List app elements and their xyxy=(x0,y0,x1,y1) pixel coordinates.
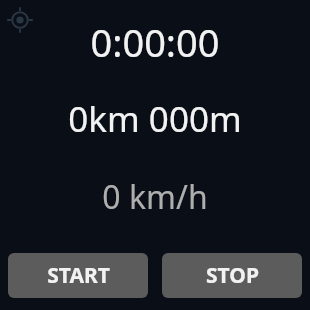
button[interactable]: START xyxy=(8,253,148,298)
button[interactable]: STOP xyxy=(162,253,302,298)
other: GPS status xyxy=(7,7,33,33)
staticText: 0:00:00 xyxy=(0,16,310,68)
staticText: STOP xyxy=(206,261,259,290)
staticText: 0km 000m xyxy=(0,95,310,143)
staticText: 0 km/h xyxy=(0,175,310,219)
staticText: START xyxy=(47,261,110,290)
